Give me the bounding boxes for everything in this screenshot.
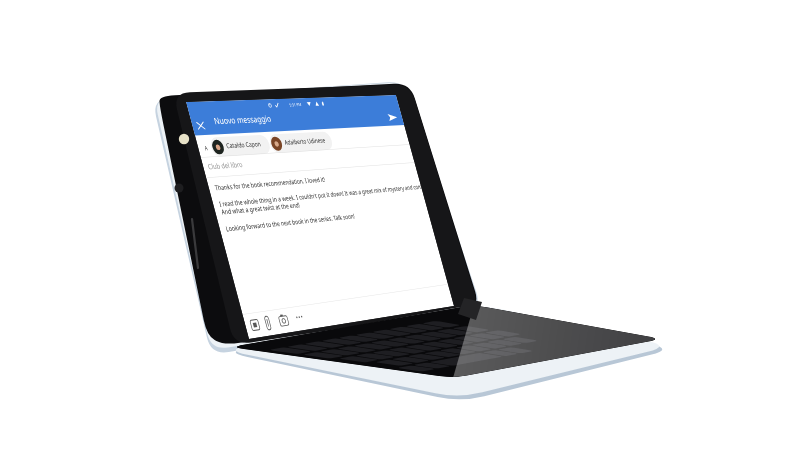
button[interactable]: Surface Duo foldable phone showing Outlo… [0, 0, 800, 450]
